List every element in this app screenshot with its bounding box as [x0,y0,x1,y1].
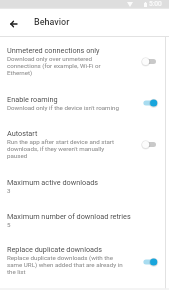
staticText: Behavior [34,17,70,28]
staticText: Replace duplicate downloads (with the sa… [7,254,124,275]
button[interactable]: Toggle [142,95,159,111]
staticText: Download only if the device isn't roamin… [7,104,119,111]
staticText: Download only over unmetered connections… [7,55,124,76]
staticText: Maximum number of download retries [7,212,131,221]
staticText: Replace duplicate downloads [7,245,102,254]
staticText: 5 [7,221,11,228]
staticText: Autostart [7,129,38,138]
staticText: Unmetered connections only [7,46,100,55]
button[interactable]: Replace duplicate downloads [0,236,169,288]
staticText: Run the app after start device and start… [7,138,124,159]
staticText: Enable roaming [7,95,58,104]
button[interactable]: Back [0,9,27,36]
button[interactable]: Autostart [0,120,169,169]
button[interactable]: Toggle [142,129,159,160]
button[interactable]: Toggle [142,245,159,279]
button[interactable]: Maximum active downloads [0,169,169,203]
button[interactable]: Unmetered connections only [0,37,169,86]
staticText: 3 [7,187,11,194]
button[interactable]: Toggle [142,46,159,77]
button[interactable]: Maximum number of download retries [0,203,169,236]
staticText: 5:00 [149,0,162,8]
button[interactable]: Enable roaming [0,86,169,120]
staticText: Maximum active downloads [7,178,99,187]
